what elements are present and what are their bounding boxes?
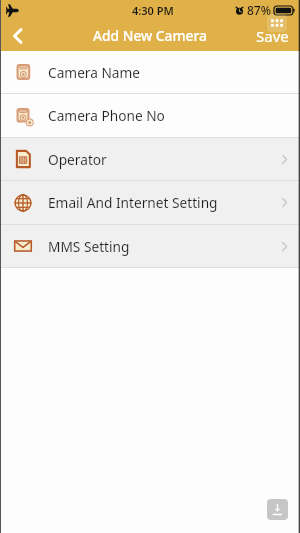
staticText: Email And Internet Setting [48, 193, 218, 212]
staticText: 4:30 PM [132, 3, 174, 18]
button[interactable]: Download [267, 499, 288, 520]
button[interactable]: Camera Phone No [0, 94, 300, 137]
staticText: Operator [48, 150, 107, 169]
staticText: Save [256, 26, 289, 46]
button[interactable]: Back [3, 20, 32, 51]
button[interactable]: MMS Setting [0, 225, 300, 267]
staticText: Camera Phone No [48, 106, 165, 125]
button[interactable]: Operator [0, 138, 300, 180]
button[interactable]: Camera Name [0, 51, 300, 93]
staticText: 87% [247, 2, 271, 18]
staticText: Add New Camera [93, 26, 207, 45]
button[interactable]: Save [256, 26, 289, 46]
button[interactable]: Email And Internet Setting [0, 181, 300, 224]
staticText: MMS Setting [48, 237, 130, 256]
button[interactable]: Assistive touch [267, 14, 287, 32]
staticText: Camera Name [48, 63, 141, 82]
